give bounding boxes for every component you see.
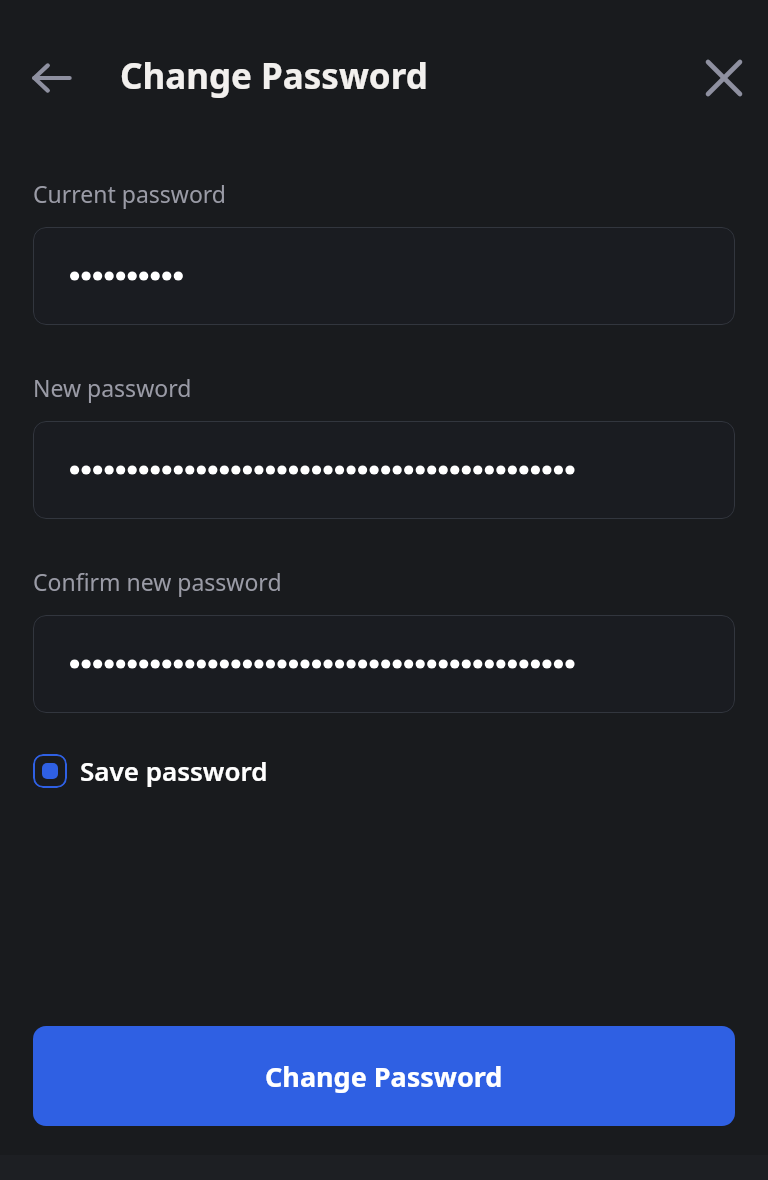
button[interactable]: Close <box>689 43 759 113</box>
staticText: New password <box>33 372 192 403</box>
staticText: Change Password <box>265 1058 503 1095</box>
staticText: Change Password <box>120 52 428 100</box>
staticText: Current password <box>33 178 227 209</box>
button[interactable] <box>33 421 735 519</box>
staticText: Confirm new password <box>33 566 282 597</box>
button[interactable]: Save password <box>33 753 268 788</box>
button[interactable] <box>33 227 735 325</box>
staticText: Save password <box>80 753 268 788</box>
button[interactable]: Back <box>14 40 90 116</box>
button[interactable]: Change Password <box>33 1026 735 1126</box>
button[interactable] <box>33 615 735 713</box>
